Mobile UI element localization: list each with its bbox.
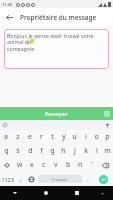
button[interactable]: z [12, 130, 24, 144]
button[interactable]: Enter [99, 175, 108, 184]
staticText: k [84, 146, 88, 156]
button[interactable]: e [24, 130, 36, 144]
staticText: g [50, 146, 55, 156]
button[interactable]: More suggestions [1, 121, 9, 129]
button[interactable]: j [69, 144, 80, 158]
button[interactable]: n [74, 158, 86, 172]
staticText: Propriétaire du message [20, 13, 97, 22]
button[interactable]: m [102, 144, 113, 158]
button[interactable]: Hide keyboard [92, 186, 113, 200]
staticText: e [28, 132, 32, 142]
staticText: Envoyer [45, 110, 68, 118]
button[interactable]: k [80, 144, 91, 158]
button[interactable]: Home [30, 186, 61, 200]
staticText: l [96, 146, 98, 156]
staticText: Bonjour. Je pense avoir trouvé votre ani… [7, 32, 106, 53]
staticText: z [16, 132, 20, 142]
staticText: w [17, 160, 23, 170]
staticText: ' [91, 160, 93, 170]
button[interactable]: Back [2, 10, 16, 24]
staticText: i [85, 132, 87, 142]
staticText: Français [52, 177, 68, 182]
staticText: x [30, 160, 34, 170]
staticText: f [40, 146, 43, 156]
button[interactable]: o [91, 130, 102, 144]
staticText: u [72, 132, 77, 142]
staticText: a [4, 132, 8, 142]
staticText: p [105, 132, 110, 142]
button[interactable]: i [80, 130, 91, 144]
staticText: . [87, 174, 89, 184]
button[interactable]: g [47, 144, 58, 158]
button[interactable]: . [83, 172, 93, 186]
staticText: r [40, 132, 43, 142]
staticText: ?123 [2, 176, 14, 183]
button[interactable]: l [91, 144, 102, 158]
button[interactable]: h [58, 144, 69, 158]
button[interactable]: Recent apps [61, 186, 92, 200]
button[interactable]: p [102, 130, 113, 144]
staticText: n [78, 160, 83, 170]
button[interactable]: Bonjour. Je pense avoir trouvé votre ani… [4, 29, 109, 69]
button[interactable]: c [38, 158, 50, 172]
button[interactable]: d [24, 144, 36, 158]
button[interactable]: y [58, 130, 69, 144]
button[interactable]: r [36, 130, 47, 144]
button[interactable]: Voice input [103, 121, 111, 129]
staticText: m [104, 146, 111, 156]
button[interactable]: b [62, 158, 74, 172]
staticText: d [28, 146, 33, 156]
button[interactable]: Back [0, 186, 30, 200]
staticText: , [20, 174, 22, 184]
button[interactable]: t [47, 130, 58, 144]
staticText: j [74, 146, 76, 156]
staticText: v [54, 160, 58, 170]
button[interactable]: ' [86, 158, 98, 172]
staticText: y [62, 132, 66, 142]
staticText: c [42, 160, 46, 170]
button[interactable]: f [36, 144, 47, 158]
button[interactable]: q [0, 144, 12, 158]
button[interactable]: x [26, 158, 38, 172]
button[interactable]: Space [38, 175, 82, 183]
staticText: b [66, 160, 71, 170]
staticText: s [16, 146, 20, 156]
staticText: 11:46 [2, 2, 13, 7]
button[interactable]: Change language [26, 172, 37, 186]
button[interactable]: ?123 [0, 172, 16, 186]
button[interactable]: u [69, 130, 80, 144]
button[interactable]: s [12, 144, 24, 158]
button[interactable]: Shift [0, 158, 14, 172]
staticText: o [94, 132, 99, 142]
button[interactable]: , [16, 172, 26, 186]
staticText: q [4, 146, 9, 156]
button[interactable]: w [14, 158, 26, 172]
button[interactable]: Envoyer [0, 107, 113, 120]
staticText: h [61, 146, 66, 156]
button[interactable]: v [50, 158, 62, 172]
button[interactable]: Backspace [98, 158, 113, 172]
staticText: t [51, 132, 54, 142]
button[interactable]: a [0, 130, 12, 144]
